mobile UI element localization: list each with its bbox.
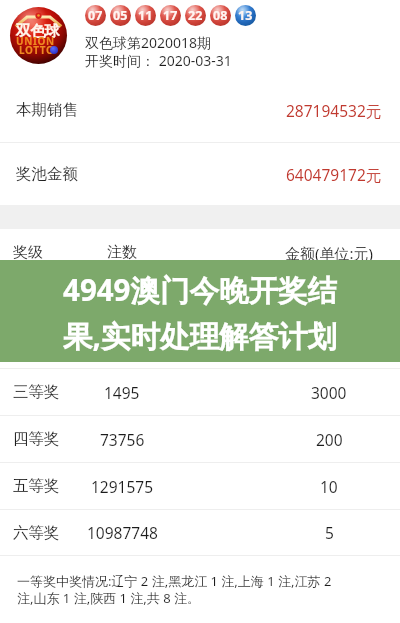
staticText: 07 [88,7,103,24]
staticText: 08 [213,7,228,24]
staticText: 22 [188,7,203,24]
staticText: 奖池金额 [16,164,78,184]
staticText: 注数 [107,243,137,262]
staticText: 奖级 [13,243,43,262]
staticText: 果,实时处理解答计划 [63,315,337,355]
staticText: 287194532元 [286,100,382,121]
staticText: LOTTO [19,43,55,57]
staticText: 13 [238,7,253,24]
staticText: 17 [163,7,178,24]
staticText: 200 [316,429,343,450]
button[interactable]: 本期销售 [0,78,400,142]
button[interactable]: 二等奖 [0,323,400,368]
staticText: 05 [113,7,128,24]
staticText: 7 [118,289,127,310]
staticText: 四等奖 [13,429,60,449]
staticText: UNION [16,34,55,48]
button[interactable]: 奖级 [0,229,400,276]
staticText: 138 [109,335,136,356]
staticText: 一等奖中奖情况:辽宁 2 注,黑龙江 1 注,上海 1 注,江苏 2 注,山东 … [17,572,332,606]
button[interactable]: 三等奖 [0,369,400,415]
staticText: 1495 [104,382,140,403]
staticText: 10 [320,476,338,497]
staticText: 10987748 [87,522,158,543]
staticText: 金额(单位:元) [285,243,374,263]
staticText: 双色球 [16,22,60,41]
staticText: 11 [138,7,153,24]
staticText: 73756 [100,429,145,450]
staticText: 4949澳门今晚开奖结 [63,269,337,309]
staticText: 175152 [302,335,356,356]
button[interactable]: 四等奖 [0,416,400,462]
staticText: 1291575 [91,476,154,497]
staticText: 三等奖 [13,382,60,402]
staticText: 5 [325,522,334,543]
button[interactable]: 奖池金额 [0,143,400,205]
staticText: 9878965 [298,289,361,310]
staticText: 3000 [311,382,347,403]
staticText: 双色球第2020018期 [85,33,212,52]
button[interactable]: 五等奖 [0,463,400,509]
staticText: 本期销售 [16,100,78,120]
button[interactable]: 一等奖 [0,277,400,322]
staticText: 六等奖 [13,523,60,543]
staticText: 开奖时间： 2020-03-31 [85,51,232,70]
staticText: 五等奖 [13,476,60,496]
staticText: 640479172元 [286,164,382,185]
button[interactable]: 六等奖 [0,510,400,555]
